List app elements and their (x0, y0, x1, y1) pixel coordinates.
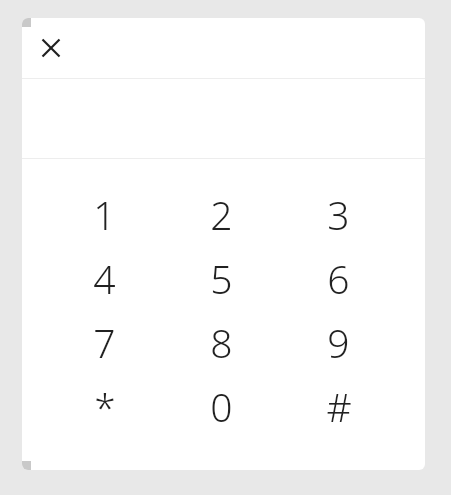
staticText: 6 (327, 252, 350, 305)
button[interactable]: 0 (163, 374, 280, 438)
button[interactable]: 4 (46, 246, 163, 310)
staticText: 0 (210, 380, 233, 433)
staticText: # (326, 380, 352, 433)
staticText: 9 (327, 316, 350, 369)
staticText: 3 (327, 188, 350, 241)
button[interactable]: 6 (280, 246, 397, 310)
staticText: 5 (210, 252, 233, 305)
button[interactable]: 8 (163, 310, 280, 374)
button[interactable]: 7 (46, 310, 163, 374)
button[interactable]: 5 (163, 246, 280, 310)
button[interactable]: 1 (46, 182, 163, 246)
button[interactable]: # (280, 374, 397, 438)
staticText: * (94, 380, 116, 433)
button[interactable]: 2 (163, 182, 280, 246)
button[interactable]: 9 (280, 310, 397, 374)
staticText: 4 (93, 252, 116, 305)
staticText: 8 (210, 316, 233, 369)
staticText: 2 (210, 188, 233, 241)
button[interactable]: Close (24, 21, 78, 75)
button[interactable]: 3 (280, 182, 397, 246)
button[interactable]: * (46, 374, 163, 438)
staticText: 1 (93, 188, 116, 241)
staticText: 7 (93, 316, 116, 369)
